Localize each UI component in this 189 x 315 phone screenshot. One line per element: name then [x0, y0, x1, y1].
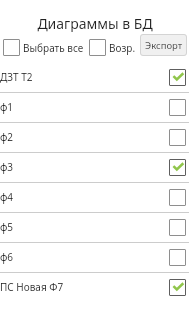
staticText: ДЗТ Т2	[0, 70, 169, 84]
button[interactable]: ф3	[0, 153, 189, 182]
staticText: Возр.	[109, 41, 136, 55]
staticText: Диаграммы в БД	[37, 14, 153, 32]
other: ПС Новая Ф7	[169, 279, 186, 296]
other: Возрастание	[89, 39, 106, 56]
staticText: ф6	[0, 250, 169, 264]
other: ф4	[169, 189, 186, 206]
button[interactable]: ф1	[0, 93, 189, 122]
button[interactable]: Экспорт	[140, 34, 187, 56]
other: ф6	[169, 249, 186, 266]
button[interactable]: ф4	[0, 183, 189, 212]
staticText: Экспорт	[145, 39, 183, 52]
button[interactable]: Выбрать все	[3, 39, 84, 56]
button[interactable]: ПС Новая Ф7	[0, 273, 189, 302]
staticText: ф2	[0, 130, 169, 144]
staticText: Выбрать все	[23, 41, 84, 55]
button[interactable]: ф2	[0, 123, 189, 152]
other: ф1	[169, 99, 186, 116]
button[interactable]: Возрастание	[89, 39, 136, 56]
other: ф3	[169, 159, 186, 176]
button[interactable]: ф5	[0, 213, 189, 242]
button[interactable]: ДЗТ Т2	[0, 63, 189, 92]
staticText: ф5	[0, 220, 169, 234]
staticText: ф4	[0, 190, 169, 204]
staticText: ф3	[0, 160, 169, 174]
button[interactable]: ф6	[0, 243, 189, 272]
other: ф5	[169, 219, 186, 236]
other: ДЗТ Т2	[169, 69, 186, 86]
staticText: ф1	[0, 100, 169, 114]
other: Выбрать все	[3, 39, 20, 56]
other: ф2	[169, 129, 186, 146]
staticText: ПС Новая Ф7	[0, 280, 169, 294]
